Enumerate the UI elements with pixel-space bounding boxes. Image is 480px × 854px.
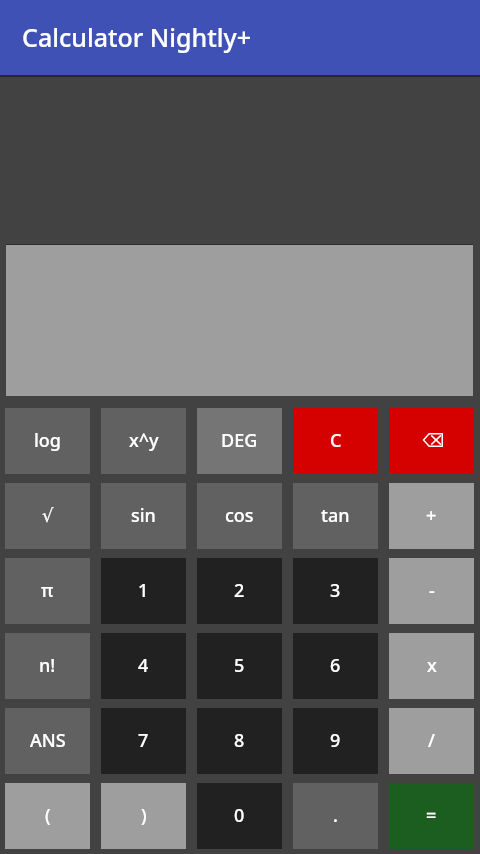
- staticText: π: [41, 578, 54, 603]
- button[interactable]: 9: [293, 708, 378, 774]
- button[interactable]: C: [293, 408, 378, 474]
- staticText: cos: [225, 503, 254, 528]
- staticText: √: [42, 505, 54, 526]
- button[interactable]: π: [5, 558, 90, 624]
- staticText: +: [426, 503, 437, 528]
- button[interactable]: (: [5, 783, 90, 849]
- button[interactable]: 0: [197, 783, 282, 849]
- button[interactable]: +: [389, 483, 474, 549]
- staticText: 5: [234, 653, 245, 678]
- staticText: C: [330, 428, 342, 453]
- button[interactable]: n!: [5, 633, 90, 699]
- staticText: 0: [234, 803, 245, 828]
- button[interactable]: 3: [293, 558, 378, 624]
- button[interactable]: tan: [293, 483, 378, 549]
- button[interactable]: cos: [197, 483, 282, 549]
- staticText: -: [429, 578, 435, 603]
- staticText: /: [428, 728, 435, 753]
- button[interactable]: 8: [197, 708, 282, 774]
- staticText: 1: [138, 578, 149, 603]
- button[interactable]: x^y: [101, 408, 186, 474]
- staticText: log: [34, 428, 62, 453]
- staticText: tan: [321, 503, 350, 528]
- button[interactable]: 7: [101, 708, 186, 774]
- staticText: x: [427, 653, 437, 678]
- staticText: sin: [131, 503, 156, 528]
- button[interactable]: DEG: [197, 408, 282, 474]
- staticText: .: [333, 803, 338, 828]
- staticText: 2: [234, 578, 245, 603]
- staticText: DEG: [221, 428, 258, 453]
- staticText: 9: [330, 728, 341, 753]
- button[interactable]: ANS: [5, 708, 90, 774]
- button[interactable]: sin: [101, 483, 186, 549]
- button[interactable]: -: [389, 558, 474, 624]
- staticText: =: [426, 803, 437, 828]
- button[interactable]: 2: [197, 558, 282, 624]
- button[interactable]: log: [5, 408, 90, 474]
- staticText: 7: [138, 728, 149, 753]
- button[interactable]: 1: [101, 558, 186, 624]
- staticText: ANS: [30, 728, 66, 753]
- button[interactable]: 4: [101, 633, 186, 699]
- button[interactable]: Backspace: [389, 408, 474, 474]
- staticText: x^y: [129, 428, 159, 453]
- button[interactable]: ): [101, 783, 186, 849]
- staticText: (: [45, 803, 51, 828]
- staticText: ): [141, 803, 147, 828]
- button[interactable]: 6: [293, 633, 378, 699]
- button[interactable]: /: [389, 708, 474, 774]
- button[interactable]: 5: [197, 633, 282, 699]
- staticText: 4: [138, 653, 149, 678]
- button[interactable]: x: [389, 633, 474, 699]
- staticText: n!: [39, 653, 56, 678]
- button[interactable]: =: [389, 783, 474, 849]
- staticText: 6: [330, 653, 341, 678]
- staticText: 3: [330, 578, 341, 603]
- staticText: Calculator Nightly+: [22, 20, 252, 54]
- button[interactable]: √: [5, 483, 90, 549]
- staticText: 8: [234, 728, 245, 753]
- button[interactable]: .: [293, 783, 378, 849]
